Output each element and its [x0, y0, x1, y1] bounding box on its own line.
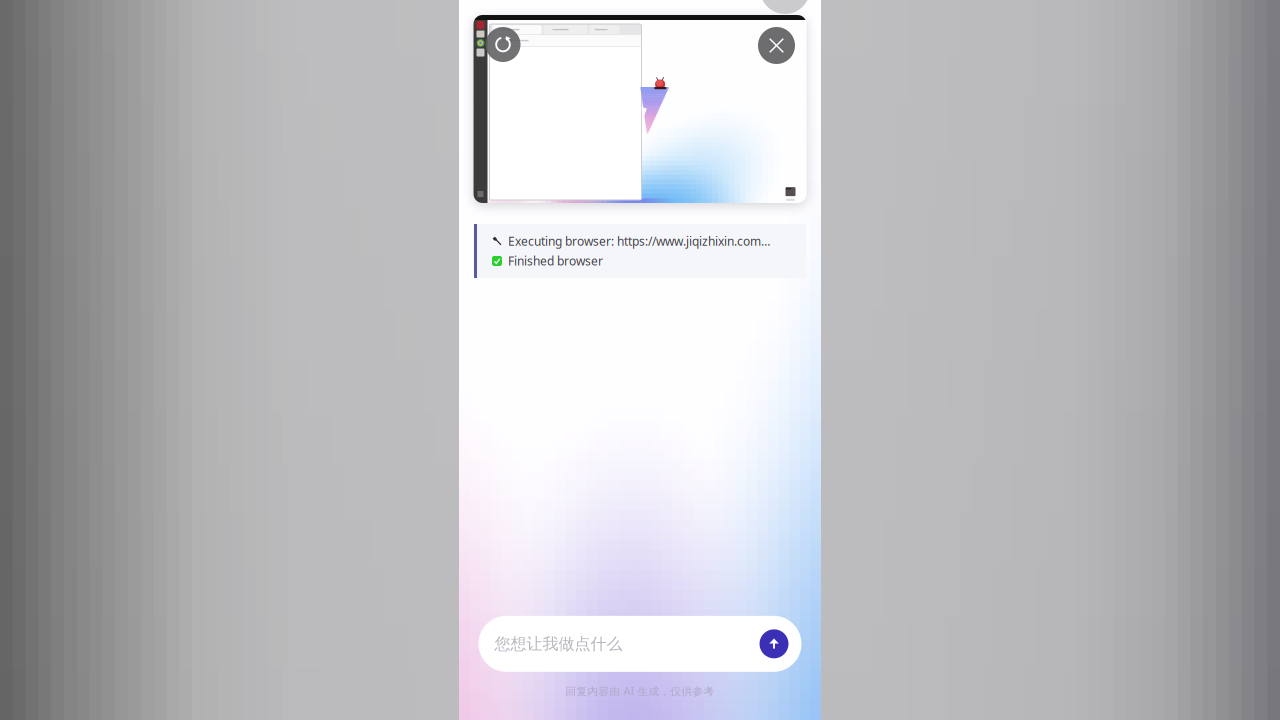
button[interactable]: Send [759, 629, 788, 658]
button[interactable]: Refresh [485, 27, 520, 62]
staticText: Finished browser [508, 253, 603, 269]
staticText: 您想让我做点什么 [494, 634, 622, 654]
staticText: 回复内容由 AI 生成，仅供参考 [565, 684, 714, 698]
staticText: Executing browser: https://www.jiqizhixi… [508, 233, 770, 249]
button[interactable]: Close [758, 27, 795, 64]
